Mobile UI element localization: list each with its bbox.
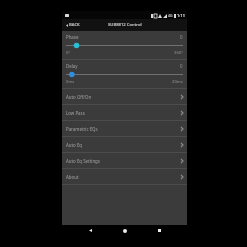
staticText: Auto Eq Settings [66, 158, 100, 164]
staticText: 20ms [172, 79, 183, 85]
button[interactable]: Delay [62, 60, 187, 89]
staticText: Auto Off/On [66, 94, 92, 100]
staticText: 360° [174, 50, 183, 56]
button[interactable]: Auto Eq [62, 137, 187, 153]
button[interactable]: Auto Off/On [62, 89, 187, 105]
staticText: 4G [168, 13, 173, 18]
button[interactable]: About [62, 169, 187, 185]
staticText: Auto Eq [66, 142, 83, 148]
staticText: Phase [66, 34, 79, 40]
staticText: SUB8812 Control [108, 22, 142, 28]
staticText: Parametric EQs [66, 126, 98, 132]
button[interactable]: Auto Eq Settings [62, 153, 187, 169]
staticText: Delay [66, 63, 78, 69]
staticText: BACK [69, 22, 80, 28]
staticText: 0° [66, 50, 71, 56]
staticText: 1:11 [177, 13, 185, 18]
staticText: Low Pass [66, 110, 85, 116]
button[interactable]: Back [83, 225, 97, 236]
button[interactable]: Home [118, 225, 132, 236]
button[interactable]: Low Pass [62, 105, 187, 121]
button[interactable]: BACK [64, 20, 82, 30]
staticText: 0 [180, 63, 183, 69]
button[interactable]: Recents [152, 225, 166, 236]
button[interactable]: Phase [62, 31, 187, 60]
staticText: 0ms [66, 79, 75, 85]
button[interactable]: Parametric EQs [62, 121, 187, 137]
staticText: 0 [180, 34, 183, 40]
staticText: About [66, 174, 79, 180]
